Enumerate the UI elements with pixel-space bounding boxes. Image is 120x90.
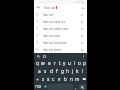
button[interactable]: hair cut men [34,32,87,39]
button[interactable]: t [57,59,62,67]
button[interactable]: y [62,59,67,67]
staticText: hair cut short [43,48,62,52]
button[interactable]: Remove suggestion [78,25,85,32]
button[interactable]: o [77,59,82,67]
button[interactable]: s [42,67,48,75]
button[interactable]: r [52,59,57,67]
staticText: q [36,60,39,66]
staticText: k [76,68,79,74]
button[interactable]: d [48,67,54,75]
button[interactable]: hair cut short [34,46,87,53]
button[interactable]: h [65,67,70,75]
button[interactable]: q [34,59,40,67]
staticText: m [75,76,80,82]
button[interactable]: l [80,67,85,75]
staticText: e [48,60,51,66]
button[interactable]: k [75,67,80,75]
staticText: x [47,76,50,82]
button[interactable]: Search in keyboard [35,53,41,59]
button[interactable]: Shift [34,75,41,83]
button[interactable]: e [46,59,52,67]
staticText: t [59,60,61,66]
button[interactable]: Search [79,84,86,90]
button[interactable]: hair cut near me [34,18,87,25]
staticText: o [78,60,81,66]
button[interactable]: u [67,59,72,67]
button[interactable]: z [41,75,46,83]
staticText: hair cut curly hair [43,41,67,45]
button[interactable]: w [40,59,46,67]
button[interactable]: . [73,83,78,90]
staticText: p [83,60,86,66]
button[interactable]: Backspace [80,75,87,83]
button[interactable]: j [70,67,75,75]
button[interactable]: ?123 [34,83,42,90]
button[interactable]: hair cut salon near [34,25,87,32]
staticText: . [75,84,77,90]
button[interactable]: Remove suggestion [78,46,85,53]
button[interactable]: hair cut [34,11,87,18]
button[interactable]: Remove suggestion [78,11,85,18]
button[interactable]: Stickers [41,53,47,59]
button[interactable]: Remove suggestion [78,39,85,46]
button[interactable]: v [56,75,62,83]
staticText: s [44,68,47,74]
button[interactable]: b [62,75,68,83]
staticText: l [82,68,84,74]
staticText: r [54,60,56,66]
button[interactable]: m [74,75,80,83]
button[interactable]: x [46,75,51,83]
staticText: z [42,76,45,82]
staticText: y [63,60,66,66]
staticText: j [72,68,74,74]
staticText: b [64,76,67,82]
staticText: v [58,76,61,82]
button[interactable]: Navigate back [34,4,43,11]
staticText: w [41,60,45,66]
staticText: hair cut [43,13,54,17]
staticText: h [66,68,69,74]
staticText: hair cut salon near [43,27,69,31]
staticText: ?123 [35,85,42,89]
staticText: n [70,76,73,82]
button[interactable]: Remove suggestion [78,18,85,25]
button[interactable]: More options [80,53,86,59]
staticText: i [74,60,76,66]
button[interactable]: Emoji [42,83,48,90]
button[interactable]: n [68,75,74,83]
button[interactable]: a [36,67,42,75]
button[interactable]: g [60,67,65,75]
staticText: c [52,76,55,82]
button[interactable]: hair cut curly hair [34,39,87,46]
button[interactable]: i [72,59,77,67]
staticText: g [61,68,64,74]
button[interactable]: c [51,75,56,83]
button[interactable]: Remove suggestion [78,32,85,39]
staticText: hair cut near me [43,20,66,24]
staticText: d [50,68,53,74]
staticText: u [68,60,71,66]
staticText: hair cut men [43,34,61,38]
staticText: hair cut [44,6,56,10]
button[interactable]: f [54,67,60,75]
staticText: f [56,68,58,74]
staticText: a [38,68,41,74]
button[interactable]: p [82,59,87,67]
button[interactable]: Voice search [79,4,86,11]
